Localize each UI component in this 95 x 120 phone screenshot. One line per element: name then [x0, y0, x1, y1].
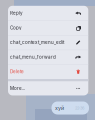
staticText: chat_menu_forward: [10, 54, 56, 60]
button[interactable]: Delete: [8, 64, 88, 79]
button[interactable]: Copy: [8, 20, 88, 35]
button[interactable]: More...: [8, 81, 88, 95]
button[interactable]: Reply: [8, 6, 88, 20]
button[interactable]: chat_context_menu_edit: [8, 35, 88, 50]
button[interactable]: chat_menu_forward: [8, 50, 88, 64]
staticText: Reply: [10, 10, 23, 16]
staticText: Delete: [10, 69, 24, 74]
staticText: More...: [10, 86, 25, 91]
staticText: Copy: [10, 25, 22, 30]
staticText: 22:36: [75, 106, 84, 110]
staticText: хуй: [55, 105, 64, 111]
staticText: chat_context_menu_edit: [10, 40, 64, 45]
